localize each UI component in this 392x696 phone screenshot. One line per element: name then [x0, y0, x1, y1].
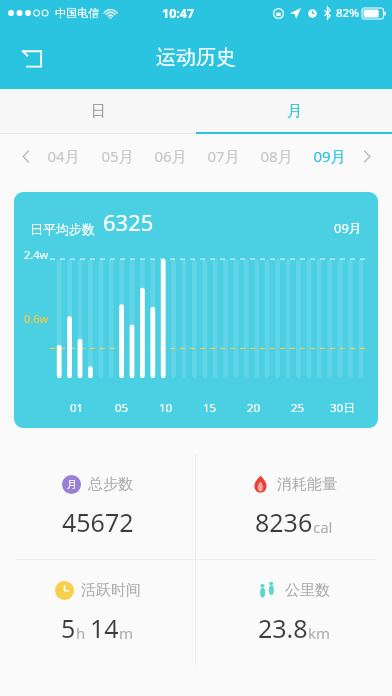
staticText: 04月 — [47, 146, 80, 166]
button[interactable]: 08月 — [250, 134, 303, 178]
button[interactable]: 活跃时间 — [0, 560, 195, 665]
staticText: 中国电信 — [55, 6, 99, 20]
staticText: 15 — [203, 400, 217, 416]
staticText: 6325 — [103, 207, 154, 237]
staticText: 0.6w — [24, 311, 49, 326]
staticText: m — [119, 623, 134, 643]
staticText: 公里数 — [285, 581, 330, 600]
staticText: 08月 — [260, 146, 293, 166]
staticText: 30日 — [330, 400, 355, 416]
staticText: 45672 — [62, 505, 134, 539]
staticText: cal — [313, 517, 333, 537]
staticText: 23.8 — [258, 611, 308, 645]
button[interactable]: 月 — [196, 89, 392, 134]
staticText: 05 — [115, 400, 129, 416]
staticText: 8236 — [255, 505, 313, 539]
button[interactable]: 返回 — [10, 36, 54, 80]
staticText: 10:47 — [162, 5, 195, 22]
button[interactable]: 上一月 — [16, 146, 36, 166]
staticText: 总步数 — [88, 475, 133, 494]
staticText: 82% — [336, 5, 359, 21]
staticText: 20 — [247, 400, 261, 416]
staticText: 活跃时间 — [81, 581, 141, 600]
staticText: 09月 — [313, 146, 346, 166]
staticText: 01 — [70, 400, 84, 416]
button[interactable]: 日平均步数 — [14, 192, 378, 428]
button[interactable]: 月 — [0, 454, 195, 559]
button[interactable]: 07月 — [197, 134, 250, 178]
staticText: 09月 — [334, 219, 362, 237]
staticText: 运动历史 — [156, 45, 236, 70]
staticText: 5 — [61, 611, 76, 645]
button[interactable]: 09月 — [303, 134, 356, 178]
button[interactable]: 公里数 — [196, 560, 392, 665]
staticText: 日 — [91, 102, 106, 121]
staticText: 2.4w — [24, 247, 49, 262]
staticText: h — [76, 623, 90, 643]
staticText: 日平均步数 — [30, 221, 95, 237]
staticText: 月 — [287, 102, 302, 121]
staticText: 25 — [291, 400, 305, 416]
staticText: 07月 — [207, 146, 240, 166]
staticText: 05月 — [101, 146, 134, 166]
staticText: km — [308, 623, 331, 643]
staticText: 月 — [67, 478, 77, 491]
button[interactable]: 05月 — [90, 134, 144, 178]
button[interactable]: 下一月 — [356, 146, 376, 166]
button[interactable]: 06月 — [144, 134, 197, 178]
button[interactable]: 04月 — [36, 134, 90, 178]
staticText: 06月 — [154, 146, 187, 166]
button[interactable]: 日 — [0, 89, 196, 134]
button[interactable]: 消耗能量 — [196, 454, 392, 559]
staticText: 10 — [159, 400, 173, 416]
staticText: 消耗能量 — [277, 475, 337, 494]
staticText: 14 — [90, 611, 119, 645]
